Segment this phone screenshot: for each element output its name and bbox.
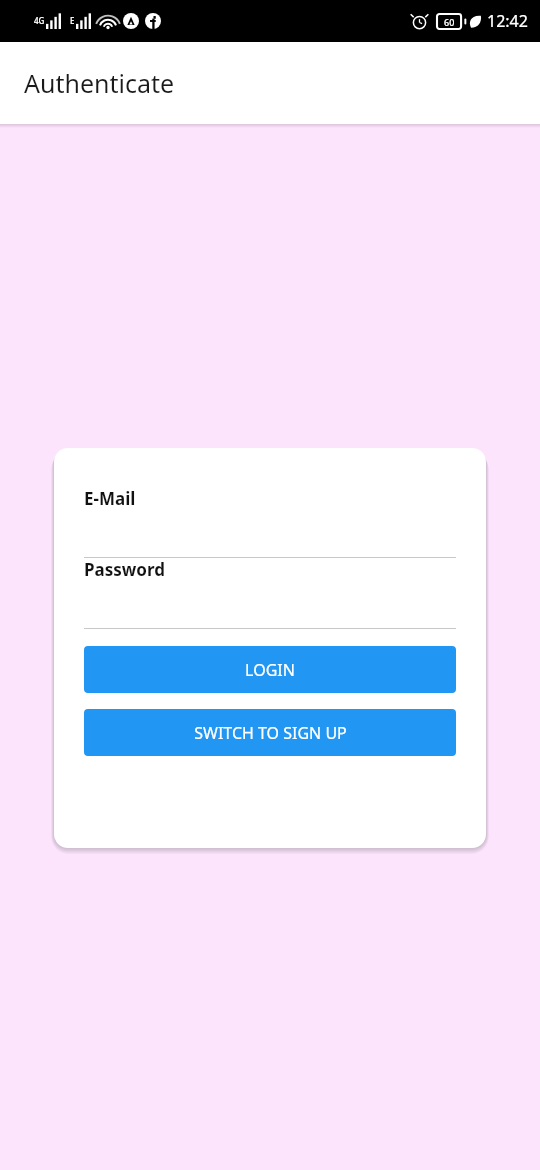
staticText: 60 — [444, 16, 455, 28]
staticText: LOGIN — [245, 659, 295, 681]
staticText: Password — [84, 558, 165, 581]
staticText: E-Mail — [84, 487, 136, 510]
button[interactable]: Password — [84, 558, 456, 629]
staticText: 4G — [34, 15, 45, 26]
staticText: 12:42 — [487, 10, 528, 32]
button[interactable]: E-Mail — [84, 487, 456, 558]
staticText: Authenticate — [24, 66, 175, 100]
staticText: E — [70, 15, 75, 26]
button[interactable]: LOGIN — [84, 646, 456, 693]
staticText: SWITCH TO SIGN UP — [194, 722, 347, 744]
button[interactable]: SWITCH TO SIGN UP — [84, 709, 456, 756]
